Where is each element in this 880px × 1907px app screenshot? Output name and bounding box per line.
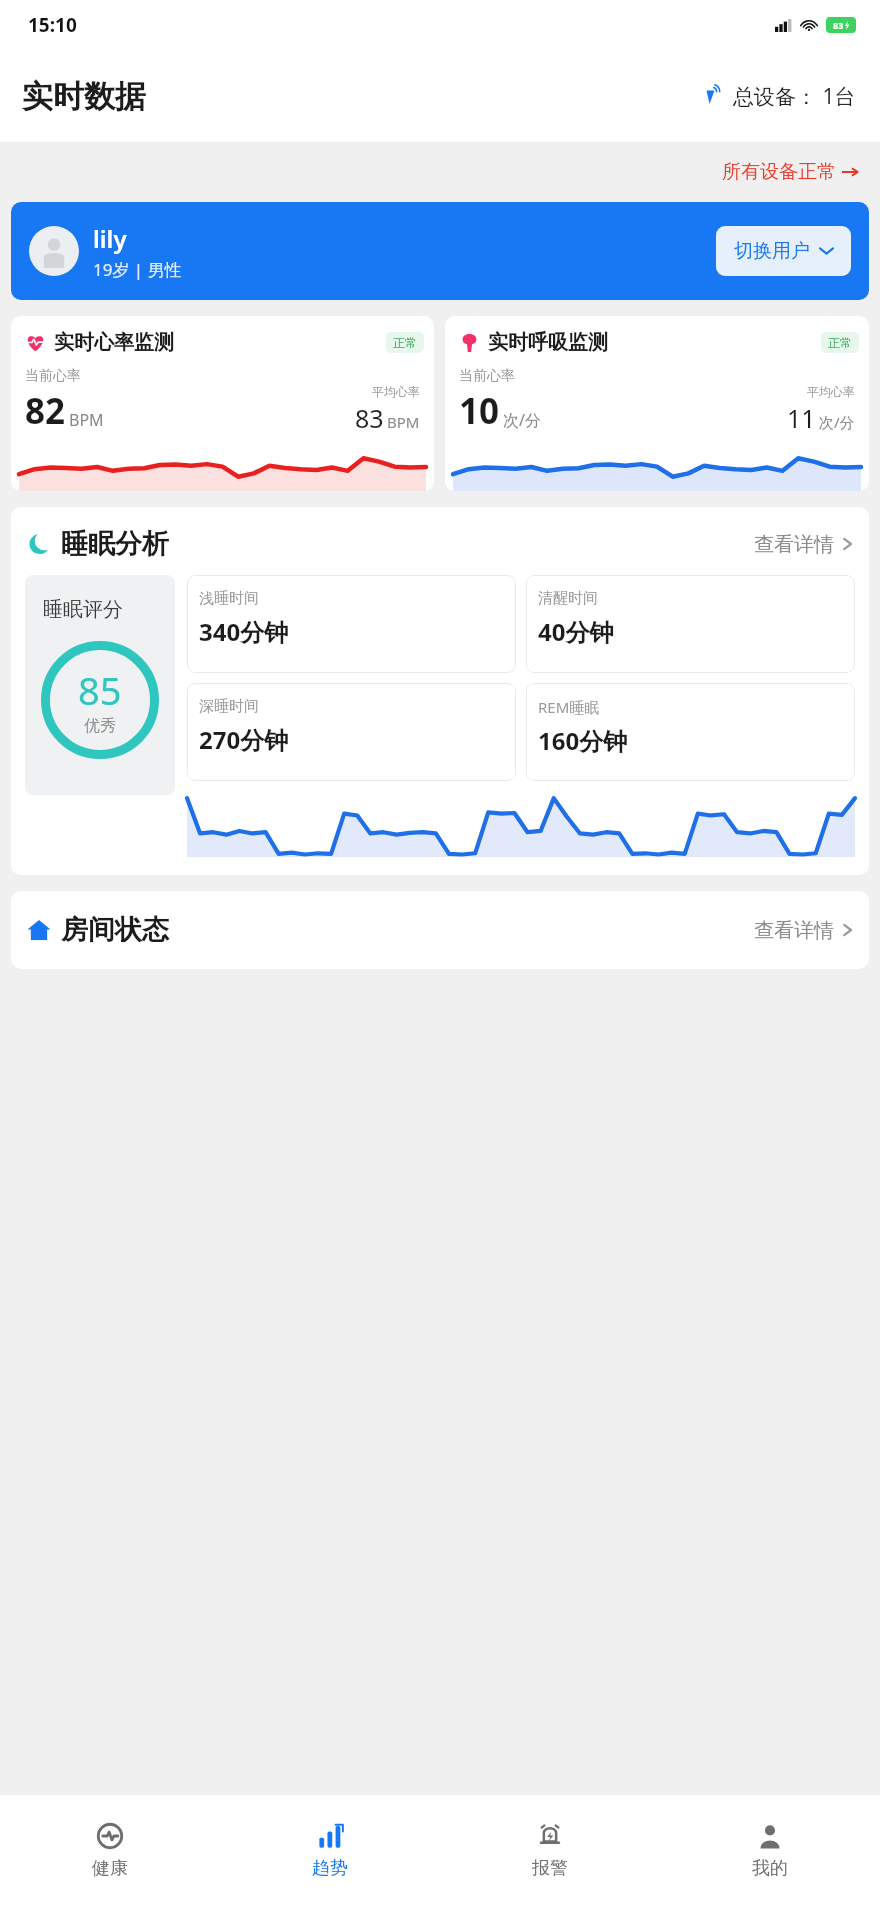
staticText: 85 <box>78 664 122 716</box>
staticText: 趋势 <box>312 1857 348 1880</box>
staticText: BPM <box>69 409 104 431</box>
staticText: 83 <box>355 401 384 435</box>
staticText: 报警 <box>532 1857 568 1880</box>
button[interactable]: 所有设备正常 <box>722 160 858 184</box>
button[interactable]: 设备 <box>703 82 856 111</box>
button[interactable]: 清醒时间 <box>526 575 855 673</box>
button[interactable]: 房间状态 <box>27 913 853 947</box>
button[interactable]: 睡眠分析 <box>27 527 853 561</box>
staticText: 15:10 <box>28 12 77 38</box>
staticText: lily <box>93 222 127 255</box>
staticText: 160分钟 <box>538 724 628 757</box>
staticText: 睡眠分析 <box>61 527 169 561</box>
staticText: 切换用户 <box>734 239 810 263</box>
staticText: 总设备： 1台 <box>733 82 856 111</box>
button[interactable]: 深睡时间 <box>187 683 516 781</box>
button[interactable]: REM睡眠 <box>526 683 855 781</box>
staticText: 实时呼吸监测 <box>488 330 608 355</box>
staticText: REM睡眠 <box>538 697 600 717</box>
staticText: 次/分 <box>819 412 855 432</box>
button[interactable]: 健康 <box>0 1795 220 1907</box>
button[interactable]: 我的 <box>660 1795 880 1907</box>
button[interactable]: 报警 <box>440 1795 660 1907</box>
staticText: 340分钟 <box>199 615 289 648</box>
button[interactable]: 切换用户 <box>716 226 851 276</box>
button[interactable]: 浅睡时间 <box>187 575 516 673</box>
staticText: 平均心率 <box>807 384 855 399</box>
staticText: 实时数据 <box>22 77 146 116</box>
button[interactable]: 趋势 <box>220 1795 440 1907</box>
button[interactable]: lily <box>11 202 869 300</box>
staticText: 270分钟 <box>199 723 289 756</box>
staticText: 正常 <box>393 335 417 350</box>
staticText: 次/分 <box>503 409 541 431</box>
staticText: 睡眠评分 <box>43 597 123 622</box>
staticText: 当前心率 <box>459 367 515 385</box>
staticText: 浅睡时间 <box>199 589 259 608</box>
staticText: 查看详情 <box>754 918 834 943</box>
staticText: 11 <box>787 401 816 435</box>
staticText: 优秀 <box>84 716 116 736</box>
staticText: 查看详情 <box>754 532 834 557</box>
staticText: 82 <box>25 387 66 435</box>
staticText: 健康 <box>92 1857 128 1880</box>
staticText: 83 <box>833 19 844 31</box>
staticText: 深睡时间 <box>199 697 259 716</box>
button[interactable]: 实时呼吸监测 <box>445 316 869 491</box>
staticText: 所有设备正常 <box>722 160 836 184</box>
button[interactable]: 实时心率监测 <box>11 316 434 491</box>
staticText: 19岁 | 男性 <box>93 258 182 281</box>
staticText: 实时心率监测 <box>54 330 174 355</box>
staticText: 40分钟 <box>538 615 614 648</box>
staticText: 平均心率 <box>372 384 420 399</box>
staticText: 清醒时间 <box>538 589 598 608</box>
staticText: 10 <box>459 387 500 435</box>
staticText: 房间状态 <box>61 913 169 947</box>
staticText: 我的 <box>752 1857 788 1880</box>
other: 设备 <box>703 86 725 108</box>
staticText: BPM <box>387 412 420 432</box>
staticText: 正常 <box>828 335 852 350</box>
staticText: 当前心率 <box>25 367 81 385</box>
